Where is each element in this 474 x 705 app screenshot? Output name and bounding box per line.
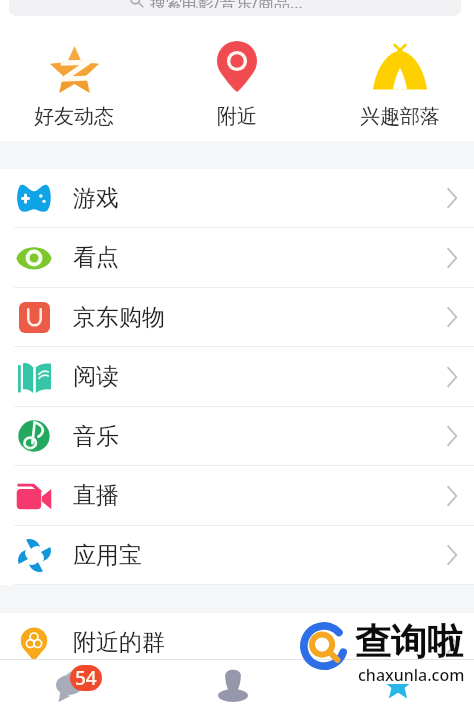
- button[interactable]: 音乐: [0, 407, 474, 466]
- staticText: 查询啦: [355, 619, 463, 664]
- staticText: 好友动态: [34, 104, 114, 129]
- button[interactable]: 游戏: [0, 169, 474, 228]
- staticText: 应用宝: [73, 541, 142, 570]
- button[interactable]: Profile: [316, 660, 474, 705]
- staticText: 京东购物: [73, 303, 165, 332]
- button[interactable]: 应用宝: [0, 526, 474, 585]
- staticText: 看点: [73, 243, 119, 272]
- staticText: 阅读: [73, 362, 119, 391]
- staticText: 附近的群: [73, 628, 165, 657]
- button[interactable]: Contacts: [158, 660, 316, 705]
- button[interactable]: 附近的群: [0, 613, 474, 673]
- button[interactable]: 阅读: [0, 347, 474, 407]
- button[interactable]: 兴趣部落: [329, 16, 471, 141]
- staticText: 54: [75, 665, 97, 691]
- button[interactable]: 直播: [0, 466, 474, 526]
- button[interactable]: 看点: [0, 228, 474, 288]
- button[interactable]: 附近: [166, 16, 308, 141]
- button[interactable]: 好友动态: [3, 16, 145, 141]
- button[interactable]: Messages: [0, 660, 158, 705]
- staticText: 直播: [73, 481, 119, 510]
- staticText: 搜索电影/音乐/商品...: [150, 0, 303, 8]
- button[interactable]: 搜索电影/音乐/商品...: [0, 0, 474, 16]
- button[interactable]: 京东购物: [0, 288, 474, 347]
- staticText: 附近: [217, 104, 257, 129]
- staticText: 音乐: [73, 422, 119, 451]
- staticText: chaxunla.com: [358, 664, 465, 686]
- staticText: 兴趣部落: [360, 104, 440, 129]
- staticText: 游戏: [73, 184, 119, 213]
